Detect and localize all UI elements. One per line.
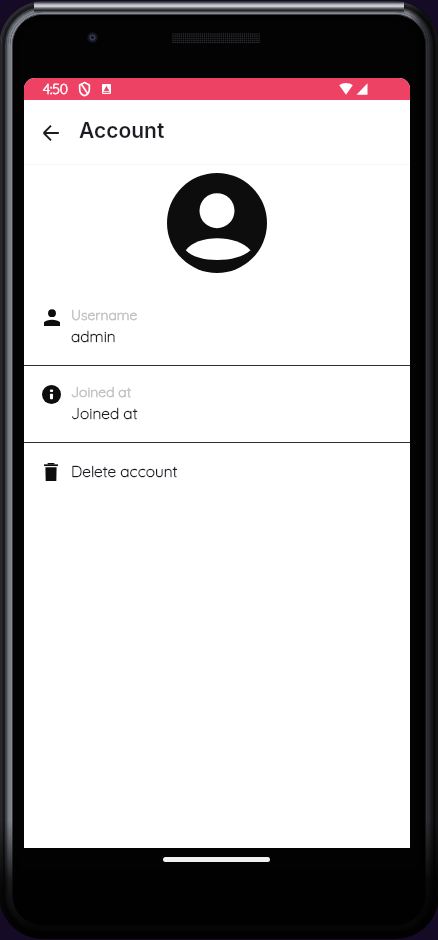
staticText: Account <box>79 118 165 143</box>
staticText: Joined at <box>71 383 132 401</box>
staticText: 4:50 <box>43 80 69 98</box>
staticText: admin <box>71 326 116 345</box>
staticText: Joined at <box>71 403 138 422</box>
staticText: Username <box>71 306 138 324</box>
button[interactable]: Joined at <box>24 366 410 442</box>
button[interactable]: Username <box>24 289 410 365</box>
button[interactable]: Delete account <box>24 443 410 501</box>
staticText: Delete account <box>71 461 178 480</box>
button[interactable]: Back <box>31 113 71 153</box>
